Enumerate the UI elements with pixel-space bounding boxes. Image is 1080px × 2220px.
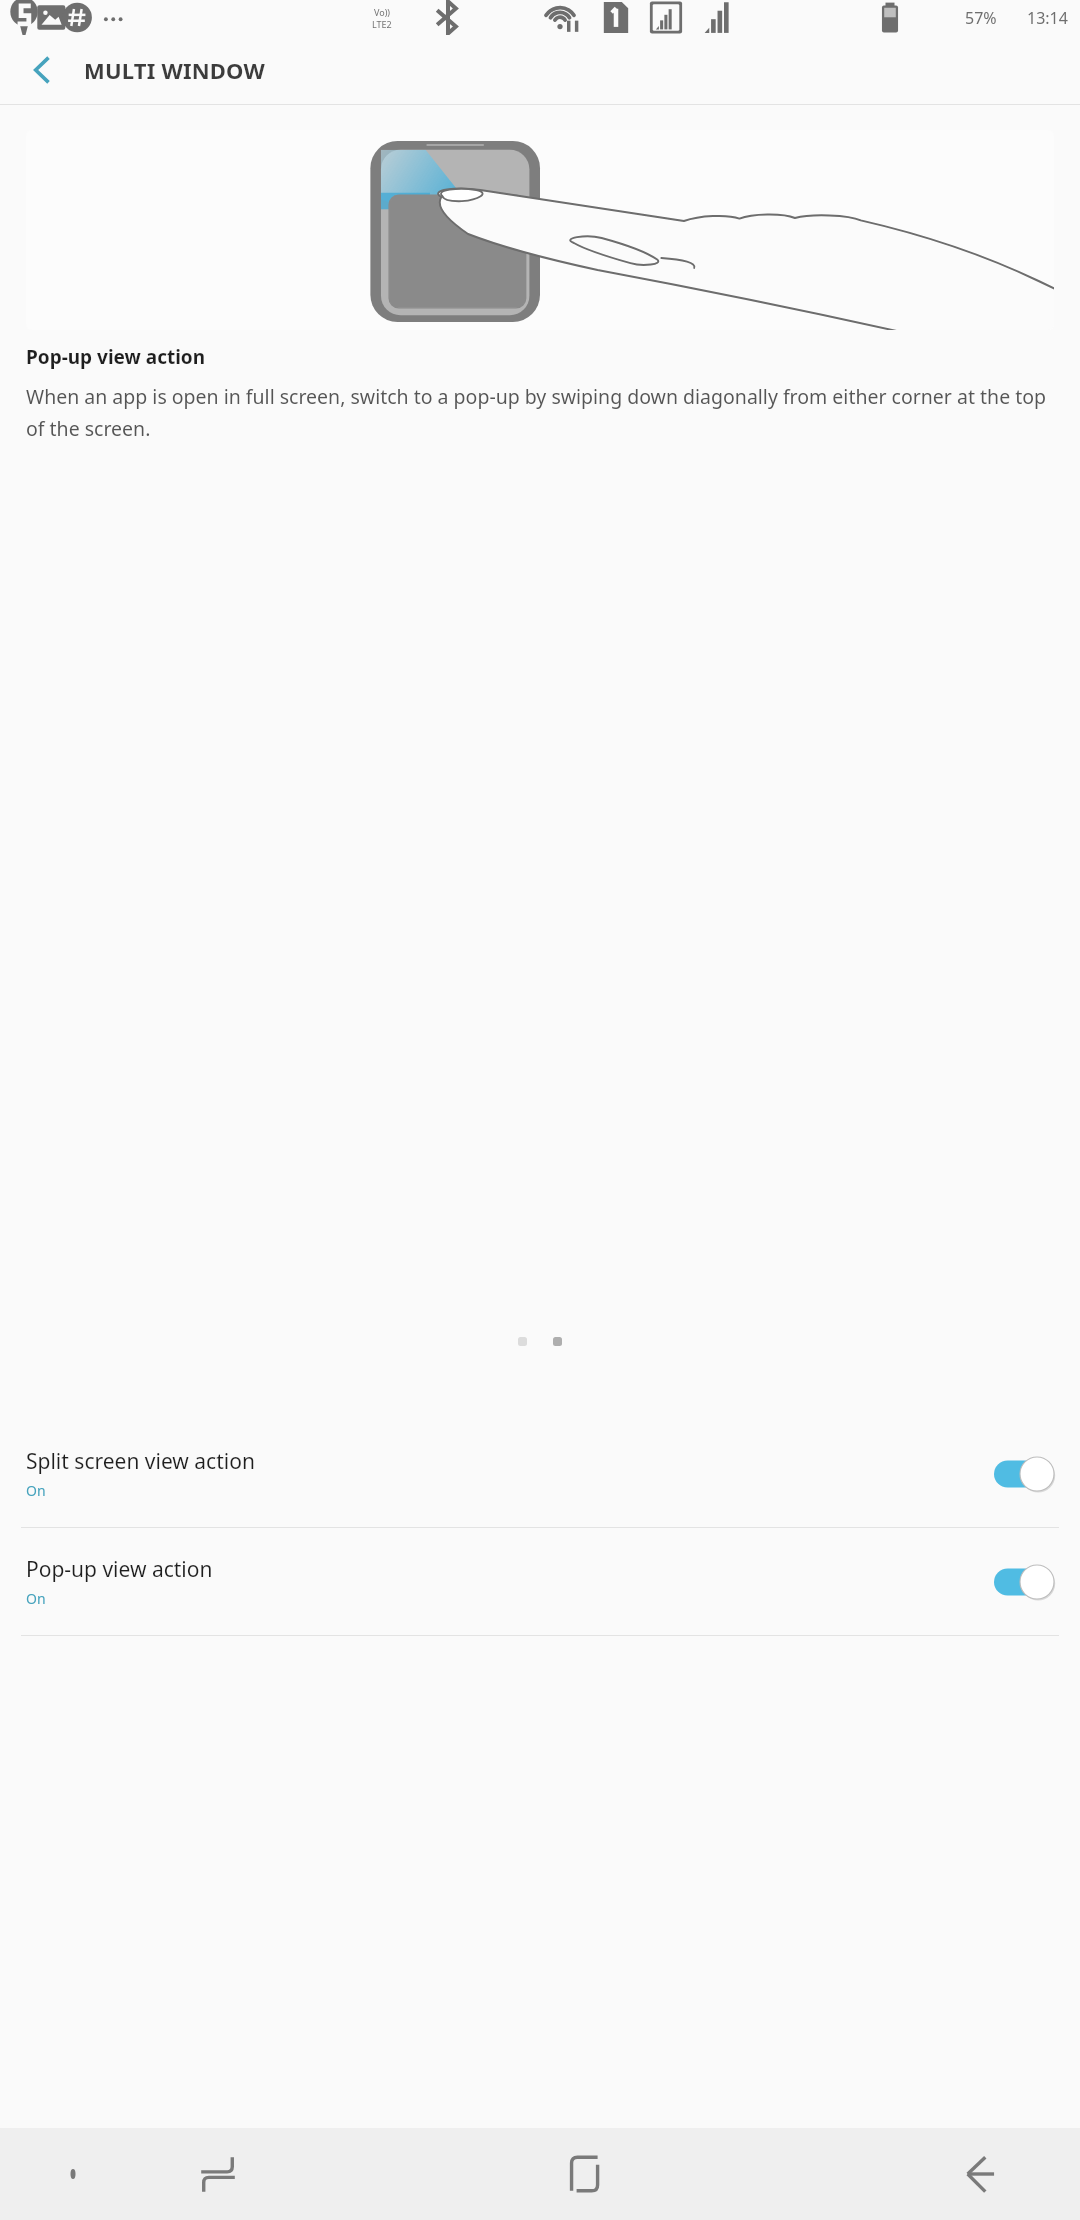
staticText: Vo)) (374, 6, 391, 18)
staticText: Split screen view action (26, 1447, 255, 1476)
button[interactable]: Back (880, 2128, 1080, 2220)
button[interactable]: Split screen view action (0, 1420, 1080, 1527)
button[interactable]: Home (553, 2142, 617, 2206)
staticText: 13:14 (1027, 7, 1068, 29)
button[interactable]: Back (20, 47, 66, 93)
staticText: MULTI WINDOW (84, 55, 265, 85)
staticText: Pop-up view action (26, 344, 206, 370)
button[interactable]: Toggle on (994, 1565, 1054, 1599)
staticText: LTE2 (372, 18, 392, 30)
button[interactable]: Recents (145, 2128, 290, 2220)
button[interactable]: Pop-up view action (0, 1528, 1080, 1635)
staticText: 57% (965, 7, 997, 29)
button[interactable]: Toggle on (994, 1457, 1054, 1491)
staticText: When an app is open in full screen, swit… (26, 383, 1058, 442)
staticText: On (26, 1481, 46, 1500)
staticText: Pop-up view action (26, 1555, 213, 1584)
staticText: On (26, 1589, 46, 1608)
